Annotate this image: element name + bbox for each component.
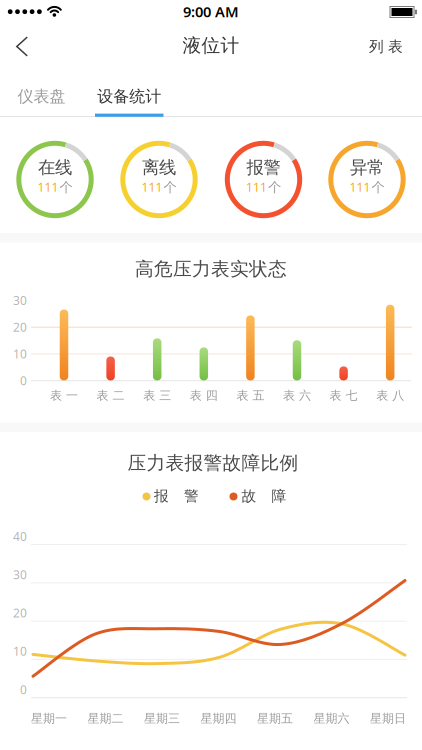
staticText: 个 (268, 179, 281, 195)
staticText: 40 (13, 528, 27, 544)
staticText: 个 (163, 179, 176, 195)
staticText: 30 (13, 567, 27, 582)
staticText: 表 八 (376, 388, 404, 403)
staticText: 20 (13, 605, 27, 621)
staticText: 在线 (38, 157, 72, 178)
staticText: 表 三 (143, 388, 171, 403)
staticText: 10 (13, 643, 27, 659)
staticText: 星期三 (144, 711, 180, 726)
staticText: 星期四 (200, 711, 236, 726)
staticText: 星期五 (257, 711, 293, 726)
staticText: 异常 (350, 157, 384, 178)
staticText: 30 (13, 292, 27, 308)
button[interactable]: 设备统计 (84, 79, 174, 113)
button[interactable]: 仪表盘 (1, 79, 81, 113)
staticText: 压力表报警故障比例 (127, 451, 298, 474)
staticText: 离线 (142, 157, 176, 178)
staticText: 0 (20, 372, 27, 388)
staticText: 111 (141, 179, 162, 195)
staticText: 表 一 (50, 388, 78, 403)
staticText: 仪表盘 (17, 87, 65, 106)
staticText: 9:00 AM (183, 2, 239, 21)
staticText: 0 (20, 681, 27, 697)
staticText: 故 障 (241, 487, 286, 505)
staticText: 表 二 (97, 388, 125, 403)
staticText: 报警 (246, 157, 280, 178)
staticText: 111 (246, 179, 267, 195)
staticText: 星期六 (313, 711, 349, 726)
staticText: 星期一 (31, 711, 67, 726)
staticText: 星期二 (87, 711, 123, 726)
staticText: 个 (59, 179, 72, 195)
staticText: 表 五 (236, 388, 264, 403)
staticText: 液位计 (182, 34, 239, 57)
staticText: 111 (349, 179, 370, 195)
staticText: 10 (13, 346, 27, 362)
button[interactable]: 列 表 (356, 26, 416, 66)
staticText: 设备统计 (97, 87, 161, 106)
staticText: 报 警 (154, 487, 199, 505)
staticText: 111 (37, 179, 58, 195)
staticText: 表 四 (190, 388, 218, 403)
staticText: 高危压力表实状态 (135, 257, 287, 280)
staticText: 20 (13, 319, 27, 335)
staticText: 表 六 (283, 388, 311, 403)
staticText: 列 表 (369, 37, 403, 55)
staticText: 星期日 (370, 711, 406, 726)
button[interactable] (0, 24, 44, 68)
staticText: 表 七 (330, 388, 358, 403)
staticText: 个 (371, 179, 384, 195)
